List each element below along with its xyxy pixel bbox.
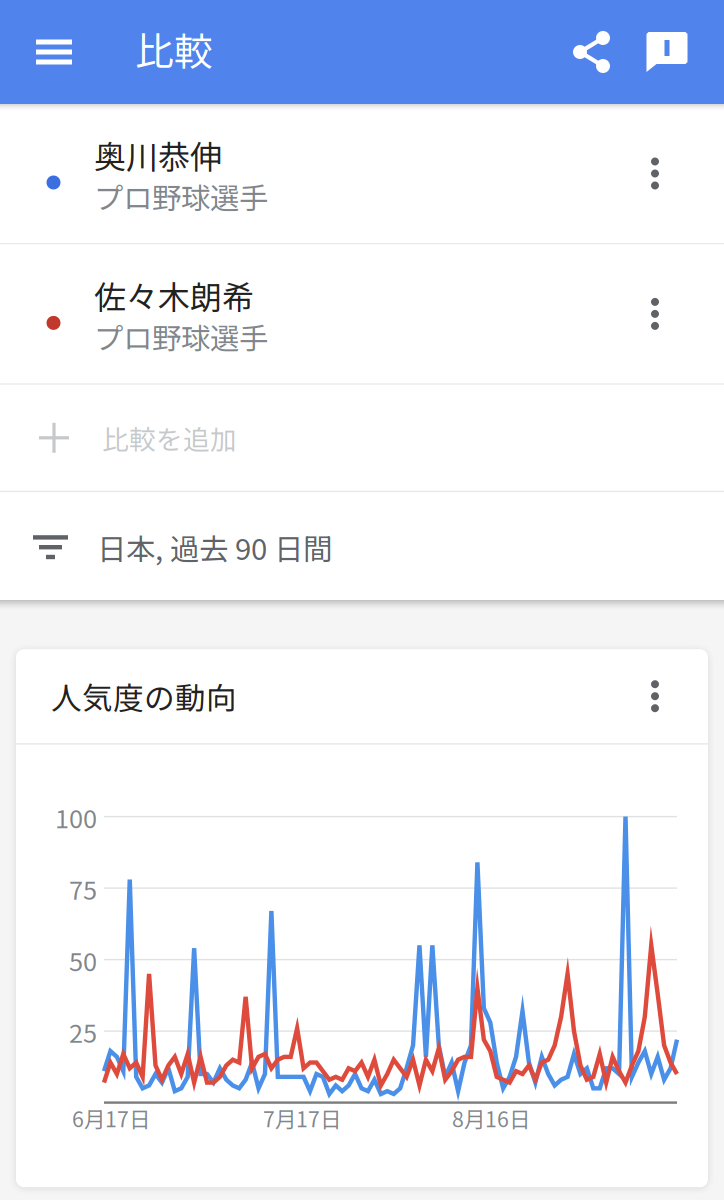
staticText: プロ野球選手 [94,315,268,358]
staticText: 佐々木朗希 [94,272,254,318]
button[interactable]: Share [573,0,610,104]
staticText: 人気度の動向 [51,674,237,718]
staticText: 25 [69,1013,97,1050]
staticText: 50 [69,942,97,978]
button[interactable]: 佐々木朗希 [0,244,724,383]
button[interactable]: 奥川恭伸 [0,104,724,243]
staticText: プロ野球選手 [94,175,268,217]
staticText: 奥川恭伸 [94,132,222,178]
staticText: 8月16日 [452,1103,530,1133]
button[interactable]: Menu [0,0,108,104]
staticText: 75 [69,870,97,907]
staticText: 6月17日 [72,1103,150,1133]
staticText: 比較 [135,21,213,77]
button[interactable]: Send feedback [621,0,713,104]
staticText: 比較を追加 [102,418,237,457]
button[interactable]: More options [602,649,708,743]
button[interactable]: 比較を追加 [0,385,724,491]
staticText: 日本, 過去 90 日間 [97,526,332,568]
button[interactable]: 日本, 過去 90 日間 [0,492,724,602]
staticText: 7月17日 [263,1103,341,1133]
staticText: 100 [55,799,97,835]
